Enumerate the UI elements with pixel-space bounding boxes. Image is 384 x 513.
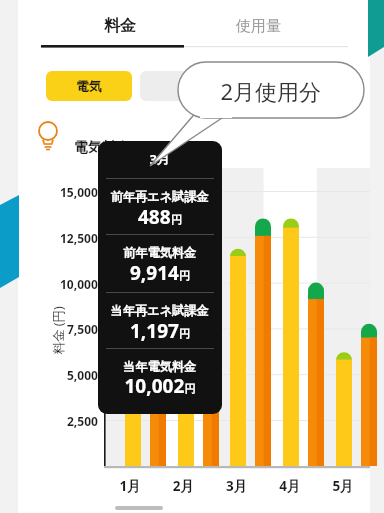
- button[interactable]: [98, 141, 222, 414]
- button[interactable]: [46, 71, 132, 101]
- button[interactable]: [18, 6, 168, 48]
- button[interactable]: Electricity: [38, 122, 66, 154]
- button[interactable]: [140, 71, 226, 101]
- button[interactable]: [185, 6, 335, 48]
